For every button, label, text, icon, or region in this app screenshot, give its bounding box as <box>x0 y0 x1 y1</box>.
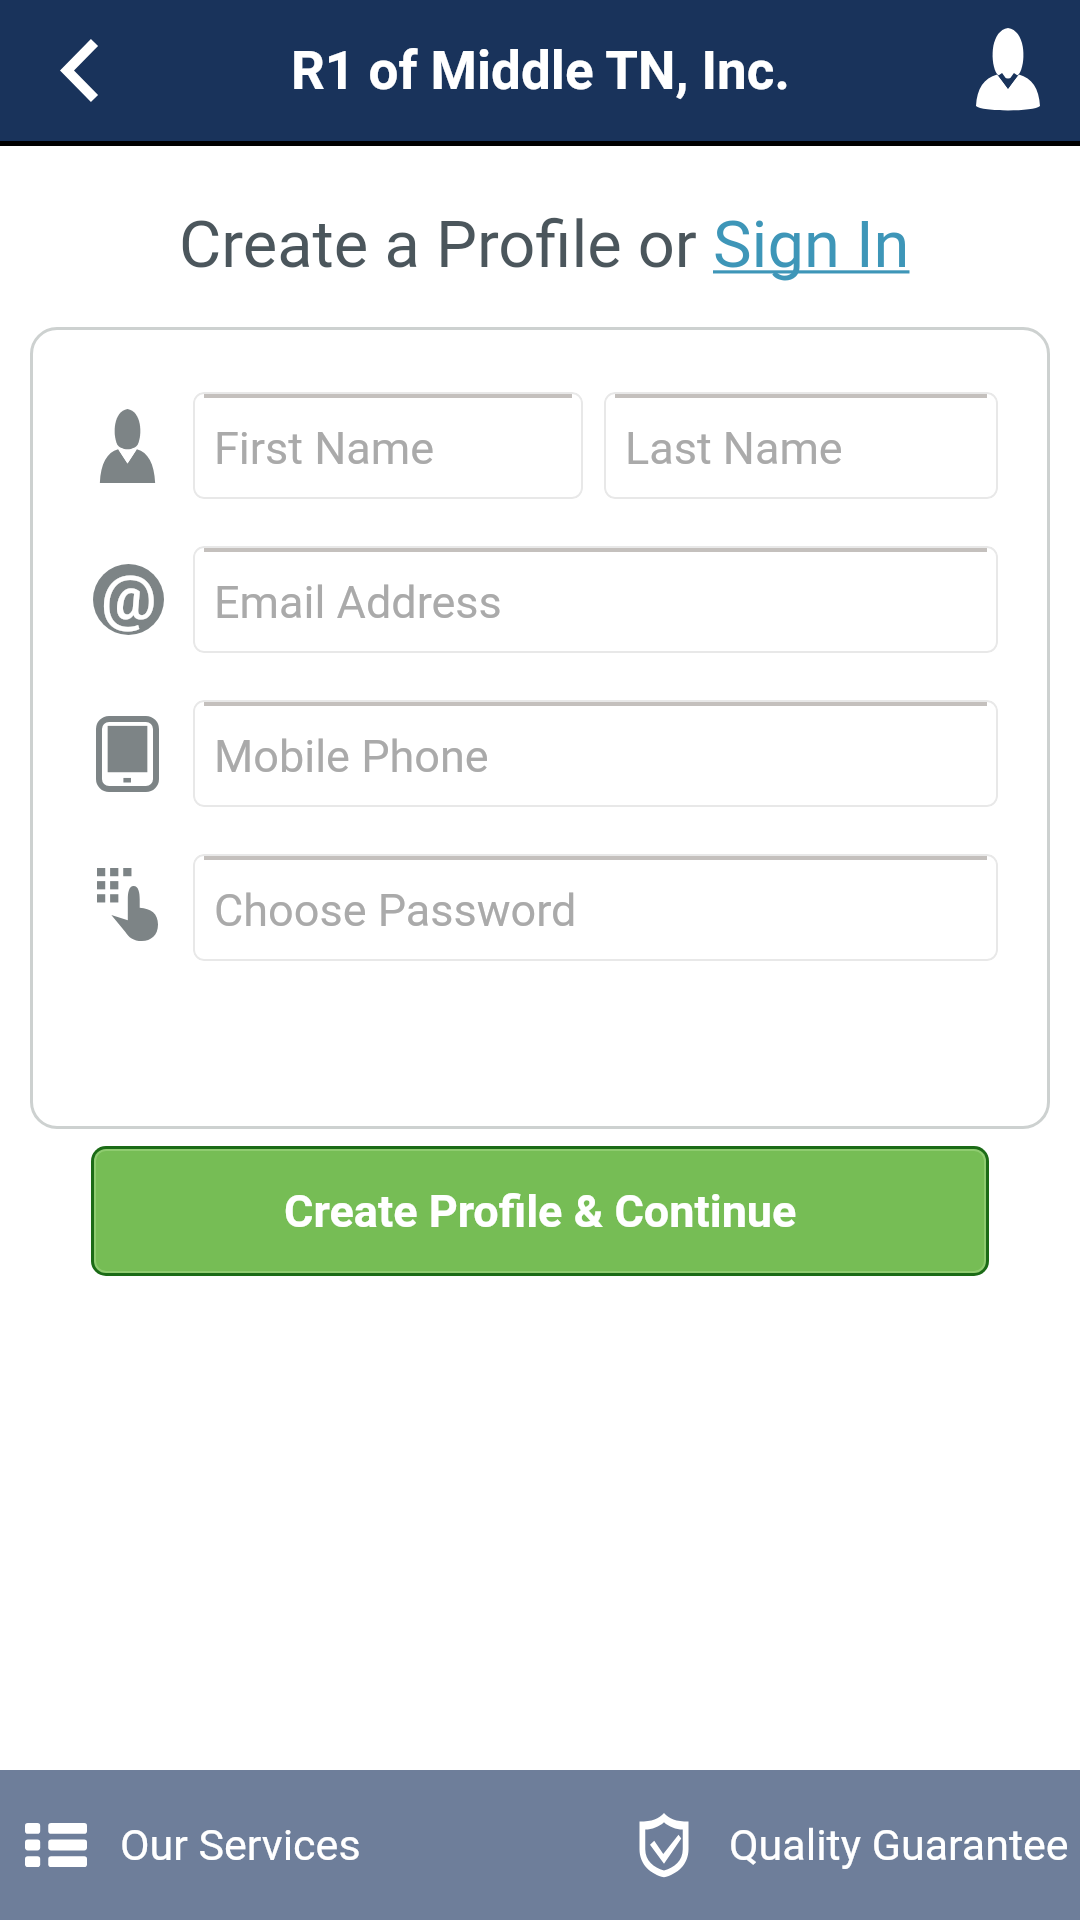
button[interactable]: Our Services <box>0 1770 540 1920</box>
button[interactable]: First Name <box>193 392 583 499</box>
staticText: Mobile Phone <box>214 730 489 783</box>
staticText: Sign In <box>713 207 910 283</box>
staticText: First Name <box>214 422 435 475</box>
button[interactable]: Sign In <box>713 207 910 283</box>
staticText: @ <box>101 564 157 632</box>
staticText: Quality Guarantee <box>729 1820 1069 1870</box>
button[interactable]: Create Profile & Continue <box>91 1146 989 1276</box>
staticText: R1 of Middle TN, Inc. <box>291 40 790 102</box>
button[interactable]: Back <box>0 0 130 141</box>
staticText: Last Name <box>625 422 843 475</box>
button[interactable]: Last Name <box>604 392 998 499</box>
button[interactable]: Choose Password <box>193 854 998 961</box>
button[interactable]: Quality Guarantee <box>540 1770 1080 1920</box>
staticText: Choose Password <box>214 884 577 937</box>
staticText: Create a Profile or <box>179 207 713 283</box>
staticText: Email Address <box>214 576 502 629</box>
button[interactable]: Mobile Phone <box>193 700 998 807</box>
staticText: Our Services <box>120 1820 361 1870</box>
staticText: Create Profile & Continue <box>284 1185 797 1238</box>
button[interactable]: Email Address <box>193 546 998 653</box>
button[interactable]: Profile <box>950 0 1080 141</box>
